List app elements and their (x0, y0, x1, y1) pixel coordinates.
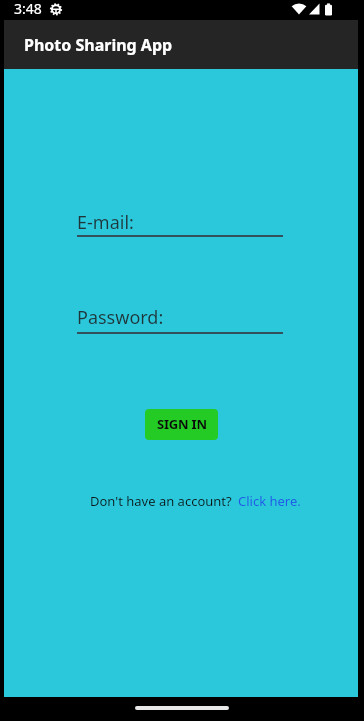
staticText: 3:48 (14, 0, 42, 18)
staticText: SIGN IN (157, 415, 207, 433)
button[interactable]: SIGN IN (145, 409, 218, 440)
staticText: Don't have an account? (90, 492, 232, 510)
staticText: E-mail: (77, 210, 134, 235)
button[interactable]: Click here. (238, 492, 301, 510)
staticText: Password: (77, 305, 164, 330)
staticText: Photo Sharing App (24, 34, 173, 56)
